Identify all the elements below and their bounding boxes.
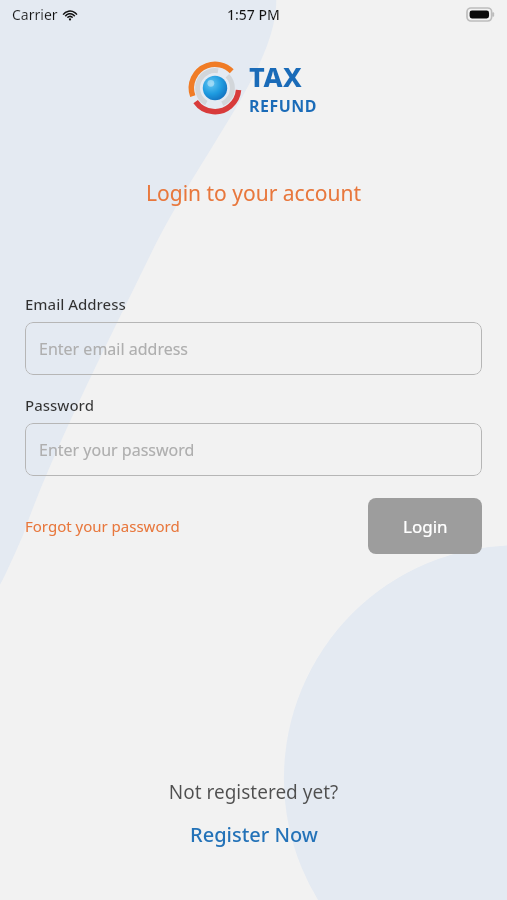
button[interactable]: Enter your password — [25, 423, 482, 476]
staticText: Password — [25, 395, 94, 415]
staticText: Login — [403, 515, 448, 538]
staticText: Carrier — [12, 5, 58, 24]
staticText: Login to your account — [0, 179, 507, 208]
staticText: TAX — [249, 58, 303, 95]
button[interactable]: Register Now — [0, 817, 507, 852]
button[interactable]: Login — [368, 498, 482, 554]
staticText: Not registered yet? — [0, 779, 507, 805]
staticText: Forgot your password — [25, 516, 180, 536]
staticText: Email Address — [25, 294, 126, 314]
staticText: Enter your password — [39, 439, 195, 461]
button[interactable]: Enter email address — [25, 322, 482, 375]
staticText: REFUND — [249, 95, 318, 117]
staticText: Register Now — [190, 821, 318, 848]
staticText: 1:57 PM — [227, 5, 280, 24]
staticText: Enter email address — [39, 338, 189, 360]
button[interactable]: Forgot your password — [25, 510, 180, 542]
